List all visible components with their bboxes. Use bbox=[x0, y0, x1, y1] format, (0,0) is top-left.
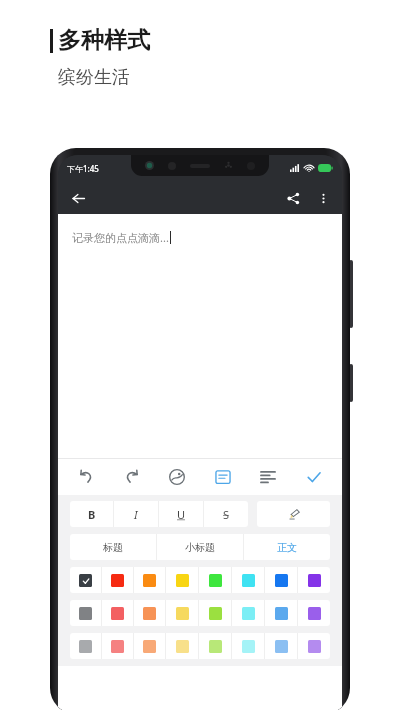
button[interactable]: Color swatch bbox=[298, 567, 330, 593]
button[interactable]: Color swatch bbox=[265, 633, 297, 659]
button[interactable]: Color swatch bbox=[298, 633, 330, 659]
button[interactable]: Share bbox=[278, 183, 308, 213]
button[interactable]: Color swatch bbox=[199, 600, 231, 626]
staticText: 小标题 bbox=[185, 541, 215, 554]
button[interactable]: Color swatch bbox=[166, 600, 198, 626]
button[interactable]: More options bbox=[308, 183, 338, 213]
staticText: 标题 bbox=[103, 541, 123, 554]
button[interactable]: Color swatch bbox=[134, 567, 165, 593]
button[interactable]: S bbox=[204, 501, 248, 527]
button[interactable]: Color swatch bbox=[134, 600, 165, 626]
button[interactable]: 标题 bbox=[70, 534, 156, 560]
button[interactable]: 正文 bbox=[244, 534, 330, 560]
staticText: 下午1:45 bbox=[67, 163, 99, 174]
staticText: B bbox=[88, 507, 96, 522]
button[interactable]: Undo bbox=[68, 461, 104, 493]
button[interactable]: Text format bbox=[205, 461, 241, 493]
button[interactable]: Back bbox=[63, 183, 93, 213]
button[interactable]: Highlight bbox=[257, 501, 330, 527]
button[interactable]: Color swatch bbox=[166, 567, 198, 593]
button[interactable]: Color swatch bbox=[102, 600, 133, 626]
button[interactable]: Color swatch bbox=[199, 633, 231, 659]
button[interactable]: Color swatch bbox=[102, 567, 133, 593]
button[interactable]: Color swatch bbox=[232, 633, 264, 659]
button[interactable]: I bbox=[114, 501, 158, 527]
button[interactable]: Insert image bbox=[159, 461, 195, 493]
button[interactable]: Color swatch bbox=[134, 633, 165, 659]
button[interactable]: 小标题 bbox=[157, 534, 243, 560]
staticText: 正文 bbox=[277, 541, 297, 554]
staticText: 多种样式 bbox=[58, 26, 150, 55]
button[interactable]: Color swatch bbox=[265, 567, 297, 593]
staticText: 记录您的点点滴滴... bbox=[72, 230, 169, 245]
staticText: U bbox=[177, 507, 186, 522]
button[interactable]: Done bbox=[296, 461, 332, 493]
staticText: S bbox=[223, 507, 230, 522]
staticText: 缤纷生活 bbox=[58, 66, 130, 89]
button[interactable]: Color swatch bbox=[102, 633, 133, 659]
staticText: I bbox=[134, 507, 138, 522]
button[interactable]: U bbox=[159, 501, 203, 527]
button[interactable]: Color swatch bbox=[166, 633, 198, 659]
button[interactable]: Color swatch bbox=[199, 567, 231, 593]
button[interactable]: Color swatch bbox=[70, 600, 101, 626]
button[interactable]: B bbox=[70, 501, 113, 527]
button[interactable]: Color swatch bbox=[298, 600, 330, 626]
button[interactable]: Color swatch bbox=[70, 567, 101, 593]
button[interactable]: Color swatch bbox=[232, 600, 264, 626]
button[interactable]: Color swatch bbox=[232, 567, 264, 593]
button[interactable]: Alignment bbox=[250, 461, 286, 493]
button[interactable]: Color swatch bbox=[70, 633, 101, 659]
button[interactable]: Redo bbox=[114, 461, 150, 493]
button[interactable]: Color swatch bbox=[265, 600, 297, 626]
